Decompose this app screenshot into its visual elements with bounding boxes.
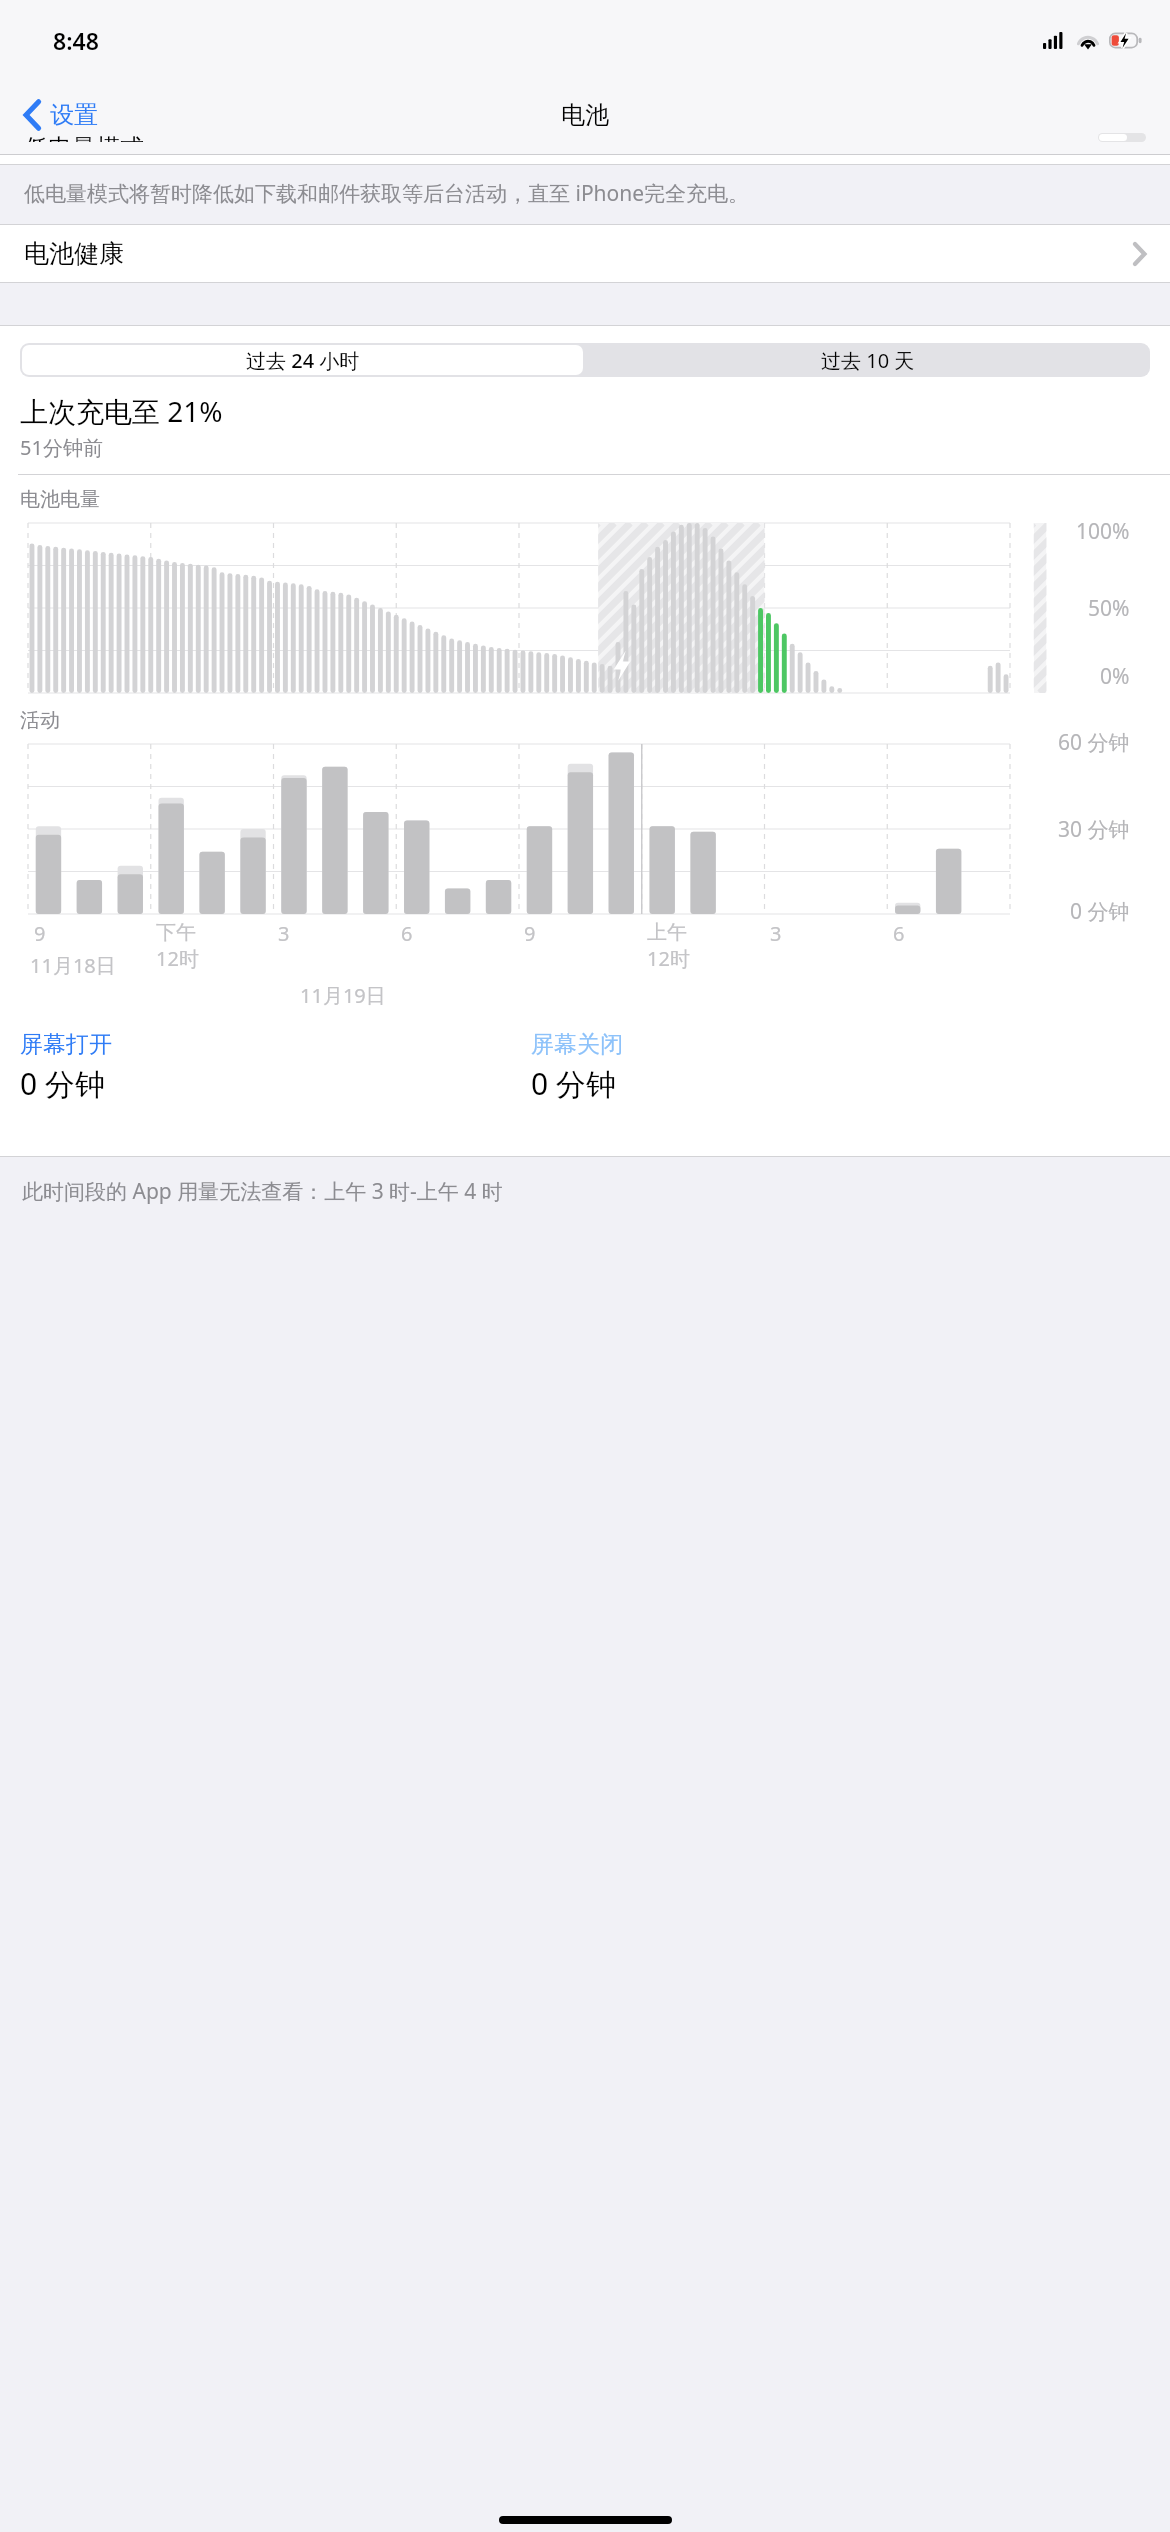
staticText: 上次充电至 21% bbox=[20, 392, 223, 430]
button[interactable]: 设置 bbox=[16, 94, 108, 136]
staticText: 100% bbox=[1076, 517, 1130, 546]
staticText: 屏幕打开 bbox=[20, 1030, 112, 1059]
staticText: 9 bbox=[34, 920, 46, 947]
staticText: 此时间段的 App 用量无法查看：上午 3 时-上午 4 时 bbox=[22, 1177, 503, 1206]
staticText: 电池 bbox=[561, 100, 609, 130]
staticText: 30 分钟 bbox=[1058, 815, 1130, 844]
staticText: 屏幕关闭 bbox=[531, 1030, 623, 1059]
staticText: 0 分钟 bbox=[531, 1063, 616, 1104]
staticText: 0 分钟 bbox=[1070, 897, 1130, 926]
staticText: 过去 10 天 bbox=[821, 347, 915, 374]
staticText: 0% bbox=[1100, 662, 1130, 691]
staticText: 3 bbox=[278, 920, 290, 947]
staticText: 9 bbox=[524, 920, 536, 947]
button[interactable]: 电池健康 bbox=[0, 225, 1170, 282]
staticText: 8:48 bbox=[53, 25, 99, 56]
staticText: 50% bbox=[1088, 594, 1130, 623]
staticText: 活动 bbox=[20, 708, 60, 733]
staticText: 低电量模式 bbox=[24, 133, 144, 142]
staticText: 过去 24 小时 bbox=[246, 347, 360, 374]
staticText: 6 bbox=[401, 920, 413, 947]
staticText: 低电量模式将暂时降低如下载和邮件获取等后台活动，直至 iPhone完全充电。 bbox=[24, 179, 750, 208]
staticText: 60 分钟 bbox=[1058, 728, 1130, 757]
staticText: 11月19日 bbox=[300, 982, 386, 1009]
staticText: 11月18日 bbox=[30, 952, 116, 979]
staticText: 上午 12时 bbox=[647, 920, 690, 972]
staticText: 电池电量 bbox=[20, 487, 100, 512]
staticText: 0 分钟 bbox=[20, 1063, 105, 1104]
staticText: 51分钟前 bbox=[20, 434, 103, 461]
staticText: 电池健康 bbox=[24, 238, 124, 269]
staticText: 设置 bbox=[50, 100, 98, 130]
staticText: 3 bbox=[770, 920, 782, 947]
button[interactable]: 过去 10 天 bbox=[585, 343, 1150, 377]
button[interactable]: 过去 24 小时 bbox=[22, 345, 583, 375]
staticText: 下午 12时 bbox=[156, 920, 199, 972]
staticText: 6 bbox=[893, 920, 905, 947]
